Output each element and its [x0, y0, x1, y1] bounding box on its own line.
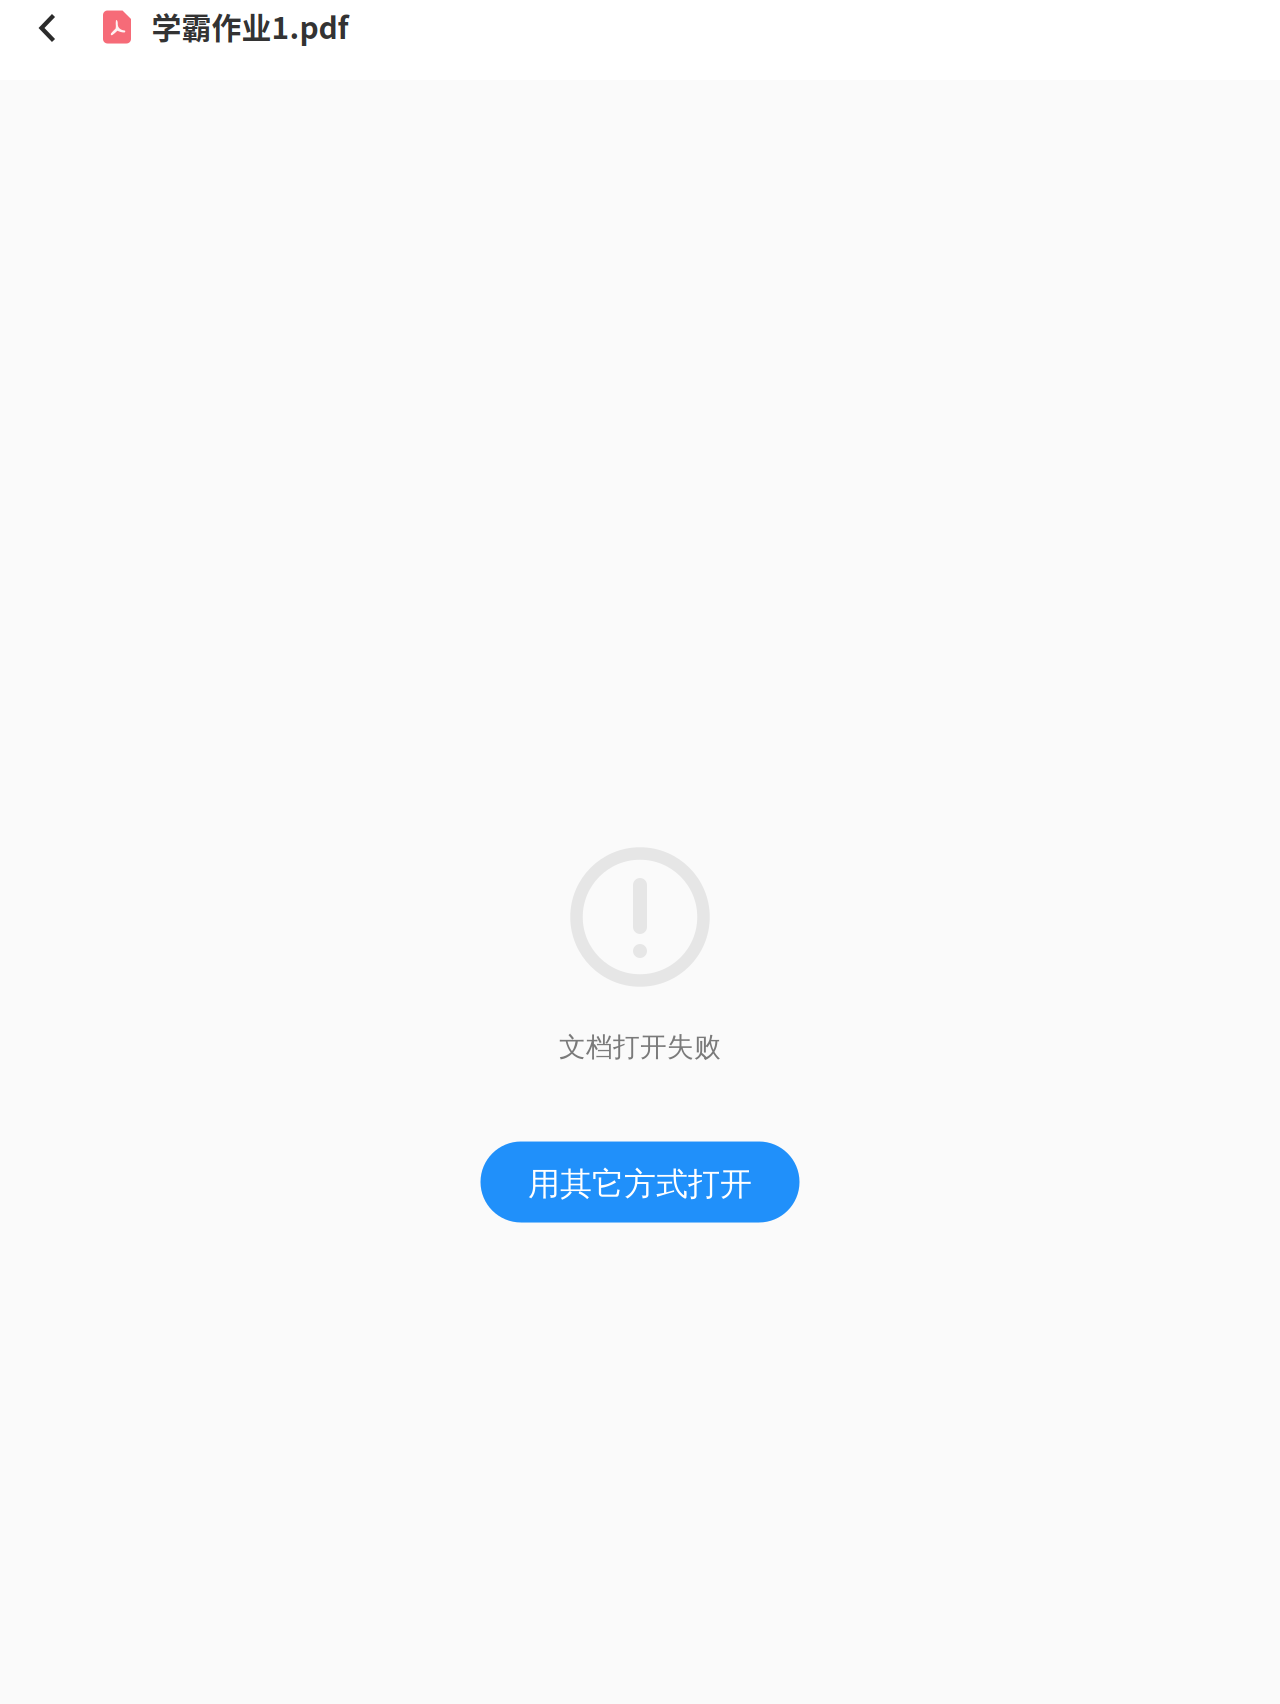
- staticText: 文档打开失败: [559, 1031, 721, 1063]
- button[interactable]: 用其它方式打开: [480, 1141, 799, 1222]
- staticText: 学霸作业1.pdf: [151, 4, 348, 48]
- staticText: 用其它方式打开: [528, 1164, 752, 1204]
- button[interactable]: Back: [17, 0, 79, 59]
